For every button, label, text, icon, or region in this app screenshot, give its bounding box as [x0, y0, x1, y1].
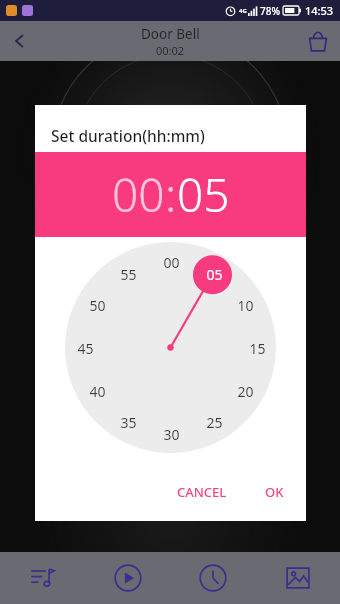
- button[interactable]: OK: [253, 477, 296, 507]
- staticText: 20: [237, 382, 254, 401]
- button[interactable]: 40: [80, 374, 114, 408]
- button[interactable]: Timer: [170, 552, 255, 604]
- staticText: 55: [120, 265, 137, 284]
- staticText: Set duration(hh:mm): [51, 125, 205, 146]
- staticText: 4G: [239, 7, 247, 15]
- staticText: 14:53: [305, 3, 334, 18]
- staticText: 10: [237, 296, 254, 315]
- staticText: OK: [265, 483, 284, 501]
- staticText: 15: [249, 339, 266, 358]
- button[interactable]: 05: [177, 163, 230, 226]
- button[interactable]: Gallery: [255, 552, 340, 604]
- button[interactable]: 00: [154, 245, 188, 279]
- staticText: 35: [120, 413, 137, 432]
- staticText: 00:02: [156, 43, 185, 58]
- button[interactable]: 20: [228, 374, 262, 408]
- button[interactable]: 25: [197, 405, 231, 439]
- button[interactable]: 35: [111, 405, 145, 439]
- button[interactable]: 55: [111, 257, 145, 291]
- button[interactable]: 05: [197, 257, 231, 291]
- button[interactable]: 50: [80, 288, 114, 322]
- staticText: 45: [77, 339, 94, 358]
- button[interactable]: 00: [65, 242, 276, 453]
- button[interactable]: 30: [154, 417, 188, 451]
- button[interactable]: Back: [0, 21, 40, 61]
- button[interactable]: Playlist: [0, 552, 85, 604]
- staticText: 30: [163, 425, 180, 444]
- button[interactable]: 10: [228, 288, 262, 322]
- staticText: 40: [89, 382, 106, 401]
- staticText: Door Bell: [141, 25, 200, 43]
- staticText: 25: [206, 413, 223, 432]
- staticText: 50: [89, 296, 106, 315]
- staticText: CANCEL: [177, 483, 227, 501]
- button[interactable]: 15: [240, 331, 274, 365]
- button[interactable]: 00: [112, 163, 165, 226]
- button[interactable]: Play: [85, 552, 170, 604]
- staticText: :: [165, 163, 177, 226]
- staticText: 00: [163, 253, 180, 272]
- staticText: 78%: [260, 4, 280, 18]
- button[interactable]: 45: [68, 331, 102, 365]
- staticText: 05: [206, 265, 223, 284]
- button[interactable]: Shop: [296, 21, 340, 61]
- button[interactable]: CANCEL: [165, 477, 239, 507]
